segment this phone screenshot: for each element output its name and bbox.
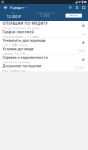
button[interactable]: Back — [1, 4, 10, 11]
button[interactable]: Справка о задолженности — [0, 55, 88, 63]
button[interactable]: ПОГАСИТЬ — [65, 14, 82, 18]
staticText: 14% — [79, 49, 85, 53]
staticText: Справка о задолженности — [3, 55, 48, 60]
staticText: Кредит — [10, 5, 24, 10]
staticText: следующий — 12 мая — [3, 35, 39, 39]
staticText: 5 200 — [40, 14, 49, 17]
staticText: заказать онлайн — [3, 60, 31, 64]
staticText: ставка 14,9 % — [3, 52, 26, 56]
staticText: 12 450 ₽ — [6, 14, 20, 19]
staticText: за последние 30 дней — [3, 26, 40, 30]
button[interactable]: Условия договора — [0, 46, 88, 55]
button[interactable]: ОПЕРАЦИИ ПО КРЕДИТУ — [0, 21, 88, 29]
button[interactable]: Реквизиты для перевода — [0, 38, 88, 46]
staticText: ПОГАСИТЬ — [70, 15, 78, 16]
staticText: ▾ — [24, 6, 26, 9]
button[interactable]: Досрочное погашение — [0, 63, 88, 72]
button[interactable]: More options — [80, 4, 87, 11]
staticText: Досрочное погашение — [3, 63, 42, 68]
staticText: счёт, БИК, банк — [3, 43, 28, 47]
staticText: ОПЕРАЦИИ ПО КРЕДИТУ — [3, 21, 48, 26]
staticText: Долг — [11, 12, 15, 14]
staticText: Реквизиты для перевода — [3, 38, 46, 43]
staticText: без комиссии — [3, 69, 26, 73]
button[interactable]: Notifications — [74, 4, 80, 11]
button[interactable]: Search — [67, 4, 74, 11]
staticText: Условия договора — [3, 46, 34, 51]
button[interactable]: График платежей — [0, 29, 88, 38]
staticText: СЛЕДУЮЩИЙ ПЛАТЁЖ 12 МАЯ — [35, 12, 55, 14]
staticText: График платежей — [3, 29, 34, 34]
staticText: 12.05 — [76, 66, 85, 70]
